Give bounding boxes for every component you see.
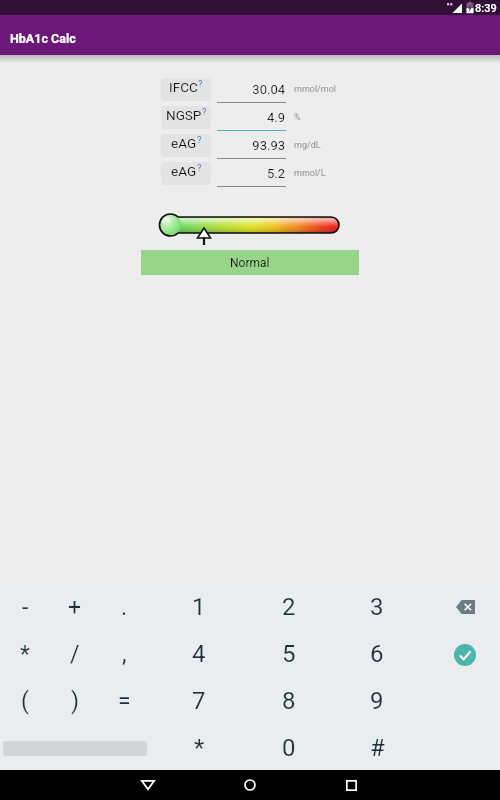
staticText: mmol/mol: [294, 84, 337, 95]
button[interactable]: 9: [355, 679, 399, 723]
staticText: 2: [282, 593, 296, 621]
staticText: NGSP: [166, 107, 202, 123]
staticText: 30.04: [252, 82, 285, 97]
staticText: ,: [122, 641, 127, 668]
button[interactable]: 4: [177, 632, 221, 676]
staticText: *: [194, 734, 205, 762]
button[interactable]: ): [53, 679, 97, 723]
button[interactable]: Normal: [141, 250, 359, 275]
staticText: ?: [197, 162, 202, 173]
button[interactable]: 5: [267, 632, 311, 676]
button[interactable]: HbA1c Calc: [0, 15, 500, 55]
staticText: ?: [202, 106, 207, 117]
button[interactable]: 1: [177, 585, 221, 629]
staticText: 6: [370, 640, 384, 668]
staticText: 7: [192, 687, 206, 715]
button[interactable]: IFCC: [161, 78, 211, 101]
staticText: 5.2: [266, 166, 285, 181]
staticText: 8: [282, 687, 296, 715]
staticText: eAG: [171, 163, 197, 179]
button[interactable]: +: [53, 585, 97, 629]
button[interactable]: 0: [267, 726, 311, 770]
staticText: 93.93: [252, 138, 285, 153]
button[interactable]: eAG: [161, 134, 211, 157]
button[interactable]: /: [53, 632, 97, 676]
staticText: mg/dL: [294, 140, 321, 151]
staticText: 4: [192, 640, 206, 668]
staticText: HbA1c Calc: [10, 31, 76, 46]
staticText: (: [21, 688, 29, 715]
staticText: 3: [370, 593, 384, 621]
staticText: %: [294, 112, 301, 123]
button[interactable]: Back: [124, 770, 172, 800]
button[interactable]: Enter: [448, 640, 482, 670]
button[interactable]: -: [3, 585, 47, 629]
button[interactable]: NGSP: [161, 106, 211, 129]
staticText: /: [70, 641, 80, 668]
button[interactable]: 2: [267, 585, 311, 629]
staticText: .: [121, 594, 128, 621]
button[interactable]: Home: [226, 770, 274, 800]
button[interactable]: 7: [177, 679, 221, 723]
staticText: 9: [370, 687, 384, 715]
staticText: IFCC: [169, 79, 198, 95]
staticText: 4.9: [266, 110, 285, 125]
staticText: eAG: [171, 135, 197, 151]
button[interactable]: ,: [102, 632, 146, 676]
staticText: ?: [197, 134, 202, 145]
button[interactable]: .: [102, 585, 146, 629]
button[interactable]: (: [3, 679, 47, 723]
staticText: 0: [282, 734, 296, 762]
staticText: 1: [192, 593, 206, 621]
button[interactable]: *: [177, 726, 221, 770]
button[interactable]: 8: [267, 679, 311, 723]
button[interactable]: *: [3, 632, 47, 676]
staticText: +: [68, 594, 82, 621]
staticText: *: [20, 641, 30, 668]
staticText: ): [71, 688, 80, 715]
staticText: ?: [198, 78, 203, 89]
button[interactable]: 3: [355, 585, 399, 629]
staticText: 8:39: [475, 2, 497, 15]
staticText: -: [22, 594, 29, 621]
button[interactable]: Recents: [327, 770, 375, 800]
staticText: 5: [282, 640, 296, 668]
button[interactable]: 6: [355, 632, 399, 676]
button[interactable]: =: [102, 679, 146, 723]
staticText: Normal: [230, 256, 270, 270]
button[interactable]: eAG: [161, 162, 211, 185]
staticText: =: [118, 688, 131, 715]
staticText: mmol/L: [294, 168, 326, 179]
staticText: #: [370, 734, 385, 762]
button[interactable]: #: [355, 726, 399, 770]
button[interactable]: Backspace: [448, 592, 482, 622]
